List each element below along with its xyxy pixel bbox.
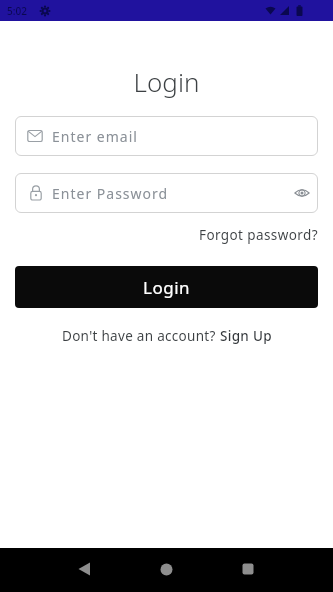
button[interactable]: Enter Password [15,173,318,213]
button[interactable] [294,185,318,201]
button[interactable]: Don't have an account? [0,327,333,345]
button[interactable]: Forgot password? [199,226,318,244]
staticText: Login [143,276,191,299]
button[interactable] [152,555,180,583]
button[interactable]: Login [15,266,318,308]
staticText: 5:02 [7,4,27,18]
staticText: Login [0,64,333,99]
staticText: Enter email [52,127,138,146]
button[interactable] [70,555,98,583]
button[interactable] [234,555,262,583]
staticText: Enter Password [52,184,294,203]
staticText: Sign Up [220,327,272,345]
staticText: Forgot password? [199,226,318,244]
staticText: Don't have an account? [62,327,220,345]
button[interactable]: Enter email [15,116,318,156]
